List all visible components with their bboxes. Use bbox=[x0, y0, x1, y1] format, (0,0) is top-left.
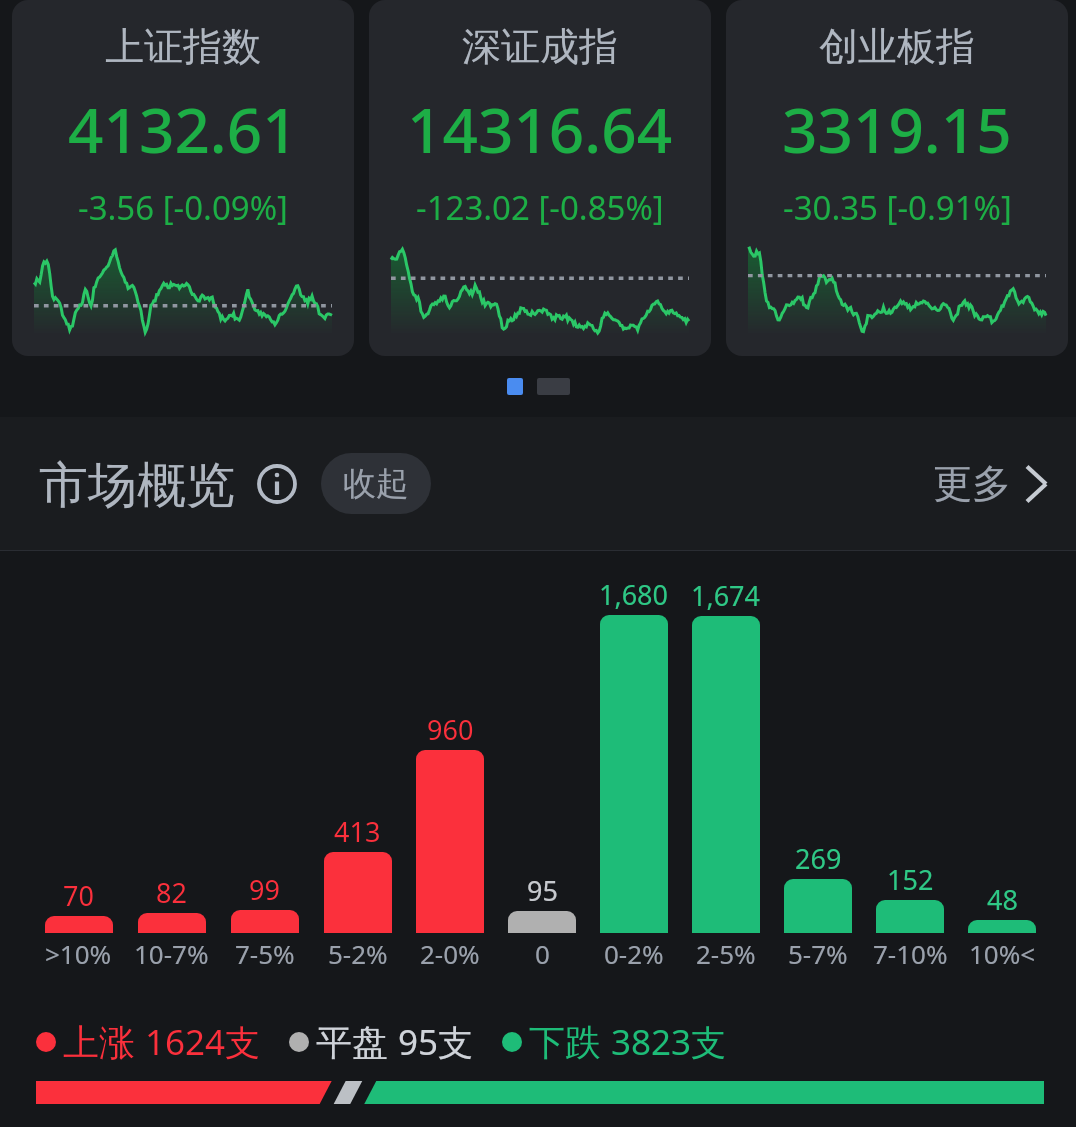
staticText: 1,680 bbox=[599, 576, 669, 613]
button[interactable]: 上证指数 bbox=[12, 0, 354, 356]
staticText: 95 bbox=[527, 872, 558, 909]
staticText: 0 bbox=[535, 936, 550, 971]
staticText: 3319.15 bbox=[782, 87, 1012, 171]
staticText: 0-2% bbox=[604, 936, 664, 971]
staticText: 269 bbox=[795, 840, 842, 877]
button[interactable]: 上涨 bbox=[36, 1018, 261, 1066]
staticText: 4132.61 bbox=[68, 87, 298, 171]
staticText: 95支 bbox=[398, 1018, 474, 1066]
staticText: 上涨 bbox=[63, 1020, 135, 1065]
staticText: 1,674 bbox=[691, 577, 761, 614]
staticText: -123.02 [-0.85%] bbox=[416, 185, 664, 230]
staticText: 152 bbox=[887, 861, 934, 898]
staticText: 7-5% bbox=[235, 936, 295, 971]
staticText: 82 bbox=[156, 874, 187, 911]
staticText: 70 bbox=[63, 877, 94, 914]
staticText: 48 bbox=[987, 881, 1018, 918]
staticText: 10-7% bbox=[134, 936, 209, 971]
staticText: 平盘 bbox=[316, 1020, 388, 1065]
staticText: 3823支 bbox=[611, 1018, 727, 1066]
staticText: 14316.64 bbox=[407, 87, 673, 171]
staticText: 99 bbox=[249, 871, 280, 908]
staticText: 2-5% bbox=[696, 936, 756, 971]
staticText: >10% bbox=[45, 936, 112, 971]
staticText: 960 bbox=[427, 711, 474, 748]
staticText: 更多 bbox=[933, 459, 1011, 508]
staticText: 10%< bbox=[969, 936, 1036, 971]
staticText: -30.35 [-0.91%] bbox=[783, 185, 1012, 230]
staticText: 上证指数 bbox=[105, 22, 261, 71]
staticText: 创业板指 bbox=[819, 22, 975, 71]
button[interactable]: 创业板指 bbox=[726, 0, 1068, 356]
staticText: -3.56 [-0.09%] bbox=[78, 185, 288, 230]
button[interactable]: Info bbox=[255, 462, 299, 506]
staticText: 7-10% bbox=[873, 936, 948, 971]
staticText: 5-7% bbox=[788, 936, 848, 971]
staticText: 5-2% bbox=[328, 936, 388, 971]
button[interactable]: 深证成指 bbox=[369, 0, 711, 356]
staticText: 市场概览 bbox=[39, 455, 235, 517]
button[interactable]: 更多 bbox=[933, 459, 1047, 508]
staticText: 2-0% bbox=[420, 936, 480, 971]
button[interactable]: 收起 bbox=[321, 453, 431, 514]
staticText: 下跌 bbox=[529, 1020, 601, 1065]
staticText: 413 bbox=[334, 813, 381, 850]
staticText: 1624支 bbox=[145, 1018, 261, 1066]
button[interactable]: 下跌 bbox=[502, 1018, 727, 1066]
button[interactable]: 平盘 bbox=[289, 1018, 474, 1066]
staticText: 深证成指 bbox=[462, 22, 618, 71]
staticText: 收起 bbox=[343, 463, 409, 505]
